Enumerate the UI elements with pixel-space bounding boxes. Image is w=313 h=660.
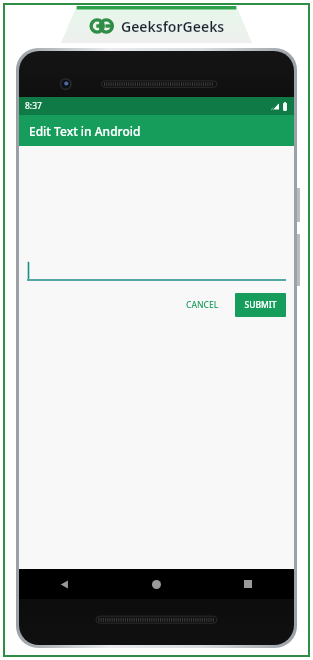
staticText: CANCEL bbox=[186, 299, 219, 311]
button[interactable]: Recents bbox=[202, 569, 294, 599]
staticText: SUBMIT bbox=[244, 299, 277, 311]
button[interactable]: Back bbox=[19, 569, 110, 599]
button[interactable]: CANCEL bbox=[178, 294, 227, 316]
staticText: 8:37 bbox=[25, 100, 42, 112]
button[interactable]: Home bbox=[110, 569, 202, 599]
staticText: GeeksforGeeks bbox=[121, 17, 225, 36]
button[interactable] bbox=[27, 259, 286, 281]
button[interactable]: SUBMIT bbox=[235, 293, 286, 317]
staticText: Edit Text in Android bbox=[29, 123, 141, 139]
